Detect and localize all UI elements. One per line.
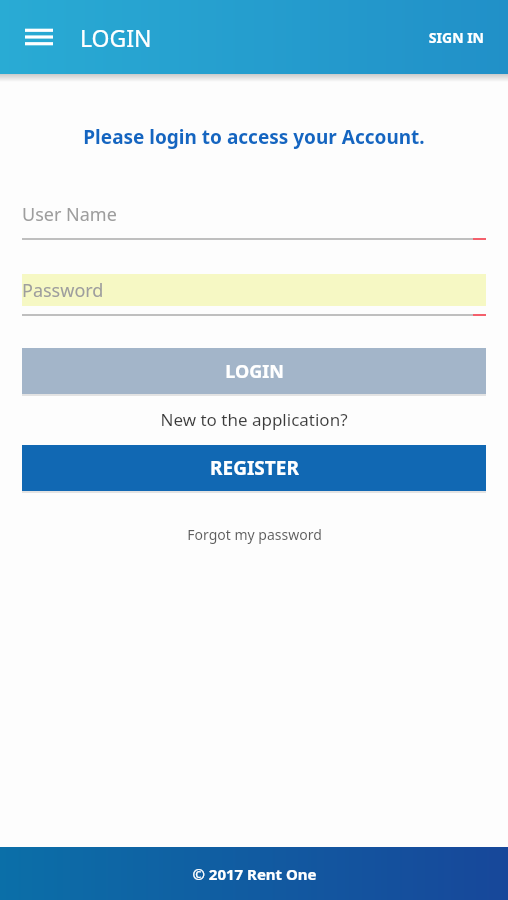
staticText: LOGIN — [80, 22, 152, 53]
button[interactable]: Open navigation menu — [16, 14, 62, 60]
staticText: © 2017 Rent One — [192, 864, 317, 884]
staticText: Please login to access your Account. — [0, 124, 508, 150]
button[interactable]: LOGIN — [22, 348, 486, 394]
staticText: New to the application? — [0, 408, 508, 431]
staticText: REGISTER — [210, 455, 299, 481]
button[interactable]: REGISTER — [22, 445, 486, 491]
staticText: SIGN IN — [428, 28, 484, 47]
staticText: User Name — [22, 202, 117, 227]
button[interactable]: Forgot my password — [0, 525, 508, 544]
button[interactable]: User Name — [22, 198, 486, 240]
button[interactable]: Password — [22, 274, 486, 316]
staticText: Forgot my password — [187, 525, 322, 544]
button[interactable]: SIGN IN — [422, 22, 490, 53]
staticText: LOGIN — [225, 359, 284, 384]
staticText: Password — [22, 278, 104, 303]
